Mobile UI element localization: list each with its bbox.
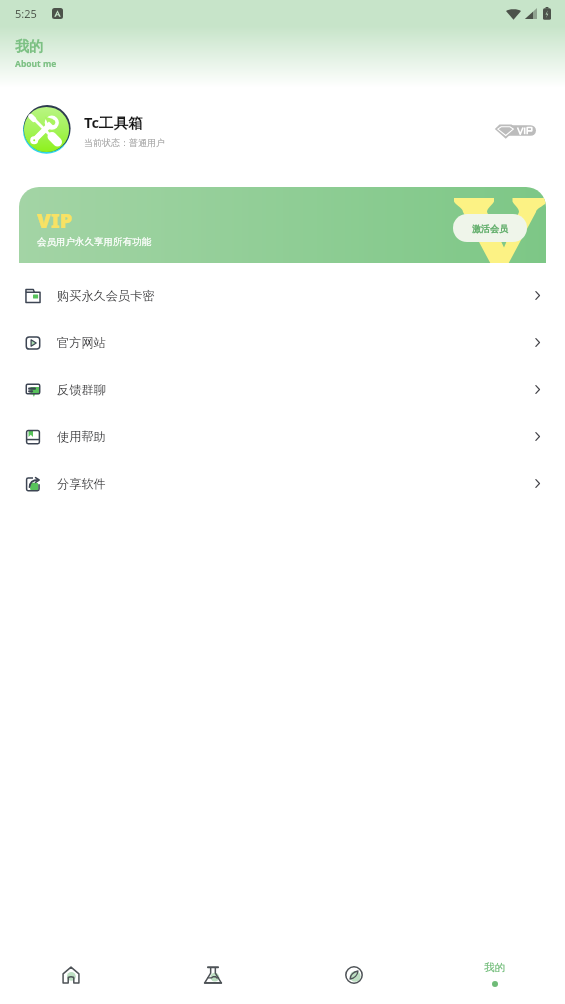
staticText: 官方网站 [57,335,106,350]
staticText: About me [15,58,57,70]
button[interactable]: VIP [19,187,546,263]
staticText: 反馈群聊 [57,382,106,397]
button[interactable]: Home [0,948,142,1004]
button[interactable]: 分享软件 [0,460,565,507]
button[interactable]: 激活会员 [453,214,527,242]
button[interactable]: 使用帮助 [0,413,565,460]
button[interactable]: 我的 [424,948,565,1004]
staticText: 购买永久会员卡密 [57,288,155,303]
staticText: 分享软件 [57,476,106,491]
staticText: VIP [37,207,73,234]
button[interactable]: 官方网站 [0,319,565,366]
staticText: 使用帮助 [57,429,106,444]
staticText: 当前状态：普通用户 [84,137,165,148]
button[interactable]: 购买永久会员卡密 [0,272,565,319]
staticText: 激活会员 [472,223,508,234]
staticText: 我的 [484,961,505,974]
staticText: Tc工具箱 [84,112,143,132]
button[interactable]: 反馈群聊 [0,366,565,413]
button[interactable]: VIP status [494,123,536,139]
button[interactable]: Discover [283,948,424,1004]
staticText: 会员用户永久享用所有功能 [37,236,151,248]
staticText: 我的 [15,38,43,56]
staticText: 5:25 [15,6,37,21]
button[interactable]: Tools [142,948,283,1004]
